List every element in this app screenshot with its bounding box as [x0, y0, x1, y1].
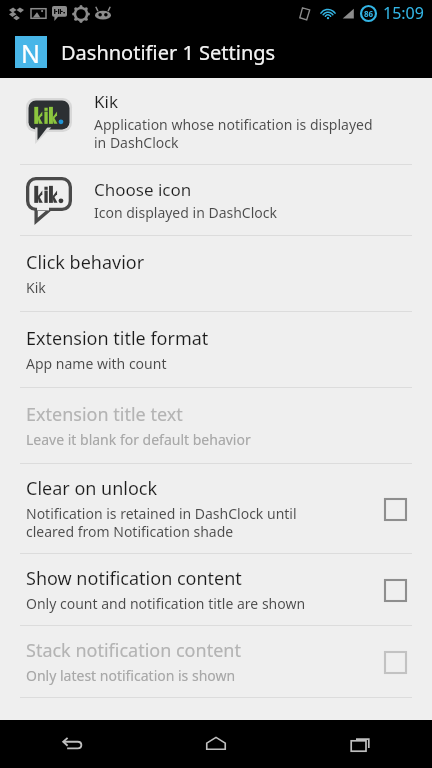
staticText: Application whose notification is displa…	[94, 115, 373, 152]
button[interactable]: Extension title format	[0, 312, 432, 387]
button[interactable]: Clear on unlock	[378, 492, 412, 526]
staticText: Choose icon	[94, 178, 192, 201]
staticText: Notification is retained in DashClock un…	[26, 504, 297, 541]
button[interactable]: Choose icon	[0, 165, 432, 235]
staticText: Icon displayed in DashClock	[94, 203, 277, 222]
staticText: Kik	[26, 278, 46, 297]
staticText: Only latest notification is shown	[26, 666, 236, 685]
button[interactable]: Back	[0, 720, 144, 768]
staticText: Leave it blank for default behavior	[26, 430, 251, 449]
button[interactable]: Stack notification content	[0, 626, 432, 697]
staticText: N	[21, 36, 41, 68]
button[interactable]: Extension title text	[0, 388, 432, 463]
staticText: Stack notification content	[26, 638, 241, 663]
other: Choose icon	[26, 177, 72, 223]
other: Kik application icon	[26, 98, 72, 144]
button[interactable]: Clear on unlock	[0, 464, 432, 553]
staticText: Extension title text	[26, 402, 183, 427]
button[interactable]: Recent apps	[288, 720, 432, 768]
staticText: Kik	[94, 90, 118, 113]
staticText: Click behavior	[26, 250, 145, 275]
staticText: 86	[364, 8, 374, 19]
button[interactable]: Show notification content	[378, 573, 412, 607]
staticText: Clear on unlock	[26, 476, 158, 501]
staticText: 15:09	[383, 2, 424, 24]
staticText: Extension title format	[26, 326, 209, 351]
staticText: Only count and notification title are sh…	[26, 594, 306, 613]
button[interactable]: Stack notification content	[378, 645, 412, 679]
staticText: App name with count	[26, 354, 167, 373]
staticText: Dashnotifier 1 Settings	[61, 39, 276, 66]
staticText: Show notification content	[26, 566, 242, 591]
button[interactable]: Click behavior	[0, 236, 432, 311]
button[interactable]: Home	[144, 720, 288, 768]
button[interactable]: Kik application icon	[0, 78, 432, 164]
button[interactable]: Show notification content	[0, 554, 432, 625]
